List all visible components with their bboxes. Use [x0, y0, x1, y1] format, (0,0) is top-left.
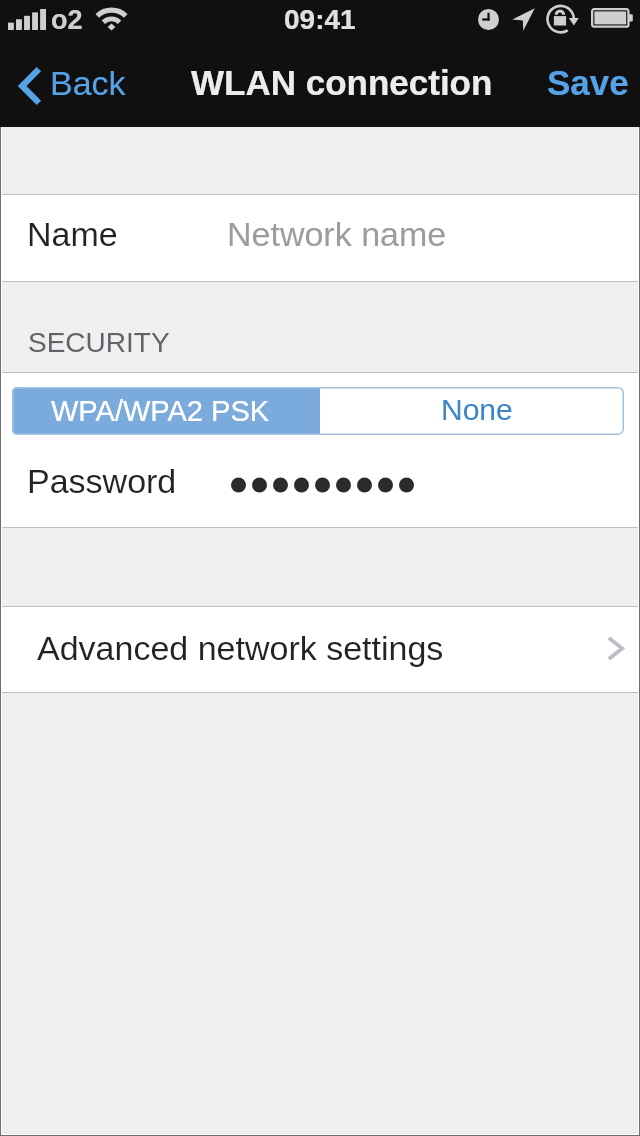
button[interactable]: None [320, 387, 624, 435]
staticText: SECURITY [28, 327, 170, 358]
staticText: Network name [227, 215, 447, 253]
button[interactable]: Save [529, 44, 640, 127]
staticText: None [441, 393, 513, 427]
staticText: Name [27, 215, 118, 253]
staticText: WLAN connection [191, 63, 493, 102]
button[interactable]: Name [0, 195, 640, 281]
other: Rotation lock [544, 4, 580, 35]
other: Wi-Fi [95, 7, 127, 32]
button[interactable]: Back [0, 44, 115, 127]
other: Battery [591, 8, 635, 29]
staticText: WPA/WPA2 PSK [51, 395, 270, 427]
staticText: 09:41 [284, 4, 356, 35]
staticText: Save [547, 63, 629, 102]
staticText: Advanced network settings [37, 629, 444, 667]
button[interactable]: Advanced network settings [0, 607, 640, 692]
button[interactable]: Password [0, 435, 640, 527]
other: Alarm [478, 9, 499, 30]
staticText: Password [27, 462, 177, 500]
staticText: o2 [51, 5, 83, 35]
button[interactable]: WPA/WPA2 PSK [12, 387, 320, 435]
other: Open advanced network settings [607, 636, 624, 661]
staticText: Back [50, 64, 126, 102]
